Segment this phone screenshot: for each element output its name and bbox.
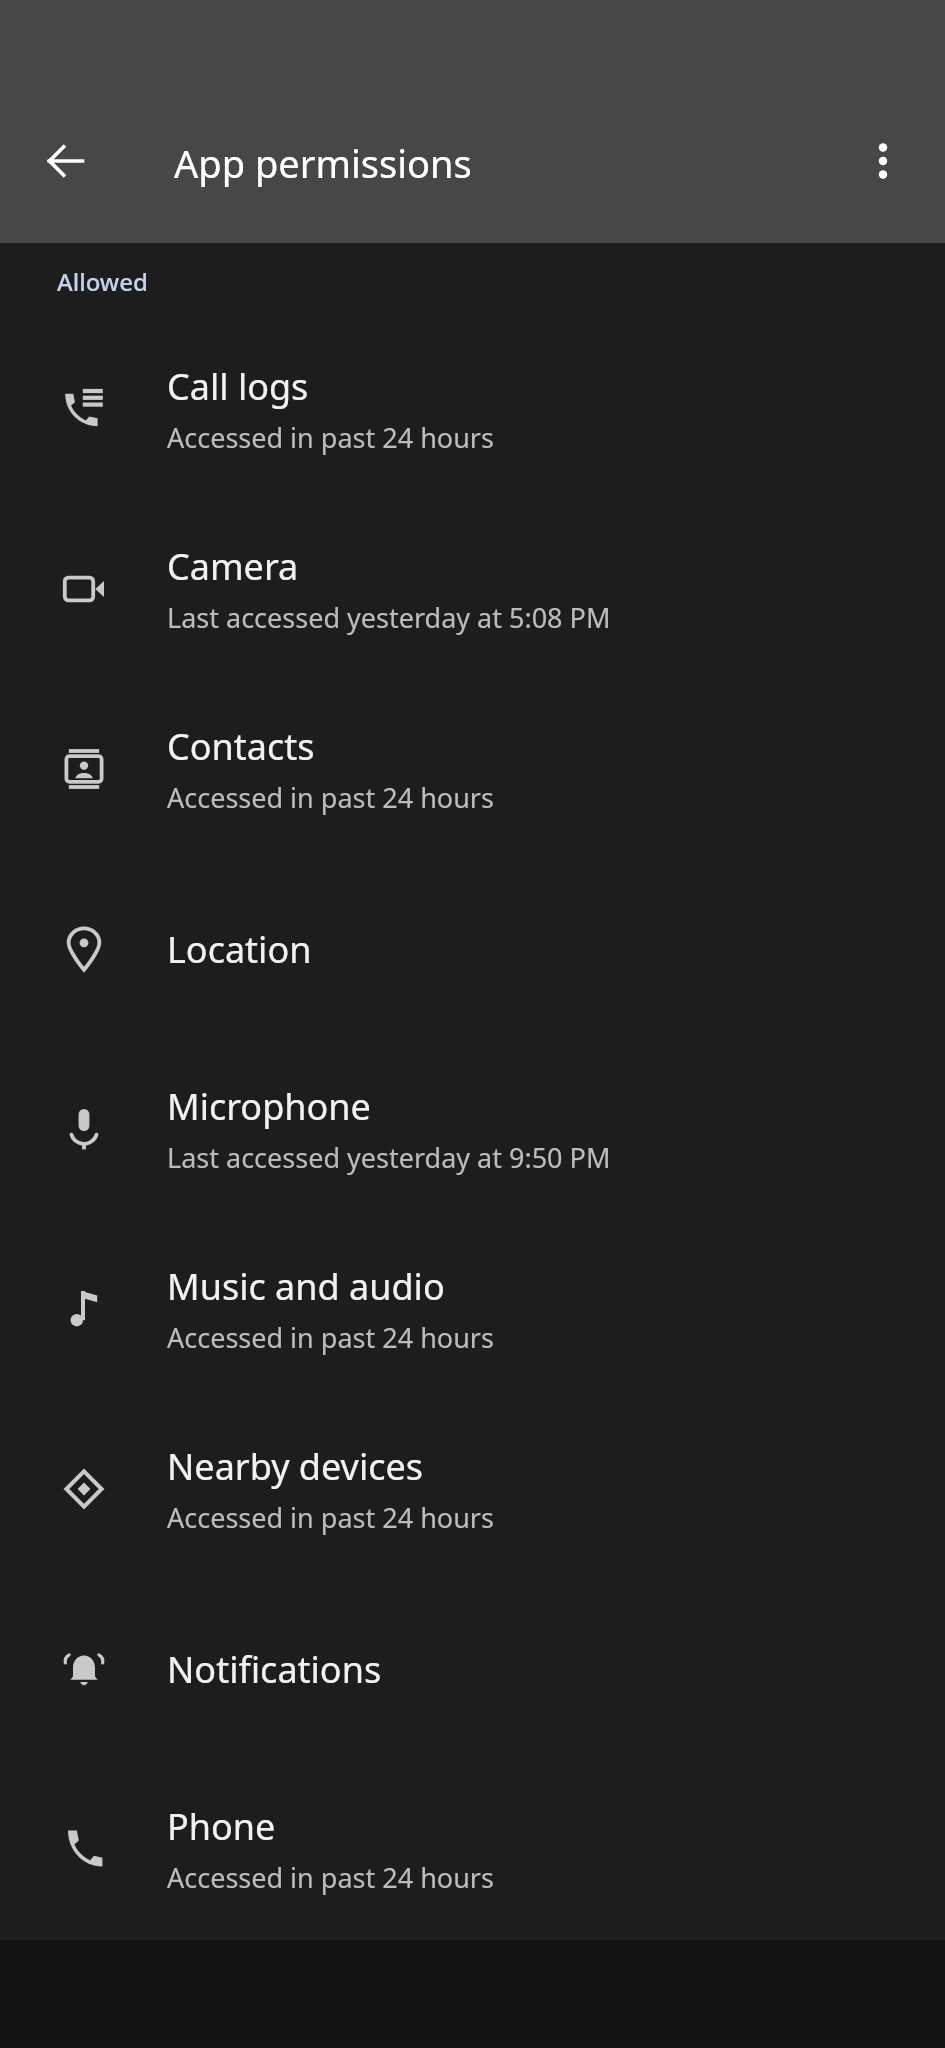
button[interactable]: Contacts xyxy=(0,679,945,859)
button[interactable]: Phone xyxy=(0,1759,945,1939)
staticText: Accessed in past 24 hours xyxy=(167,779,494,816)
staticText: Accessed in past 24 hours xyxy=(167,419,494,456)
staticText: Accessed in past 24 hours xyxy=(167,1499,494,1536)
button[interactable]: More options xyxy=(839,117,927,205)
button[interactable]: Call logs xyxy=(0,319,945,499)
staticText: Nearby devices xyxy=(167,1442,423,1491)
staticText: Camera xyxy=(167,542,299,591)
staticText: Location xyxy=(167,925,312,974)
staticText: Last accessed yesterday at 9:50 PM xyxy=(167,1139,611,1176)
button[interactable]: Music and audio xyxy=(0,1219,945,1399)
staticText: Accessed in past 24 hours xyxy=(167,1319,494,1356)
button[interactable]: Notifications xyxy=(0,1579,945,1759)
staticText: Notifications xyxy=(167,1645,382,1694)
staticText: Contacts xyxy=(167,722,315,771)
button[interactable]: Location xyxy=(0,859,945,1039)
button[interactable]: Microphone xyxy=(0,1039,945,1219)
staticText: App permissions xyxy=(174,137,472,189)
staticText: Music and audio xyxy=(167,1262,445,1311)
button[interactable]: Nearby devices xyxy=(0,1399,945,1579)
staticText: Phone xyxy=(167,1802,276,1851)
staticText: Last accessed yesterday at 5:08 PM xyxy=(167,599,611,636)
staticText: Accessed in past 24 hours xyxy=(167,1859,494,1896)
button[interactable]: Navigate up xyxy=(22,117,110,205)
button[interactable]: Camera xyxy=(0,499,945,679)
staticText: Microphone xyxy=(167,1082,371,1131)
staticText: Call logs xyxy=(167,362,309,411)
staticText: Allowed xyxy=(57,265,148,298)
